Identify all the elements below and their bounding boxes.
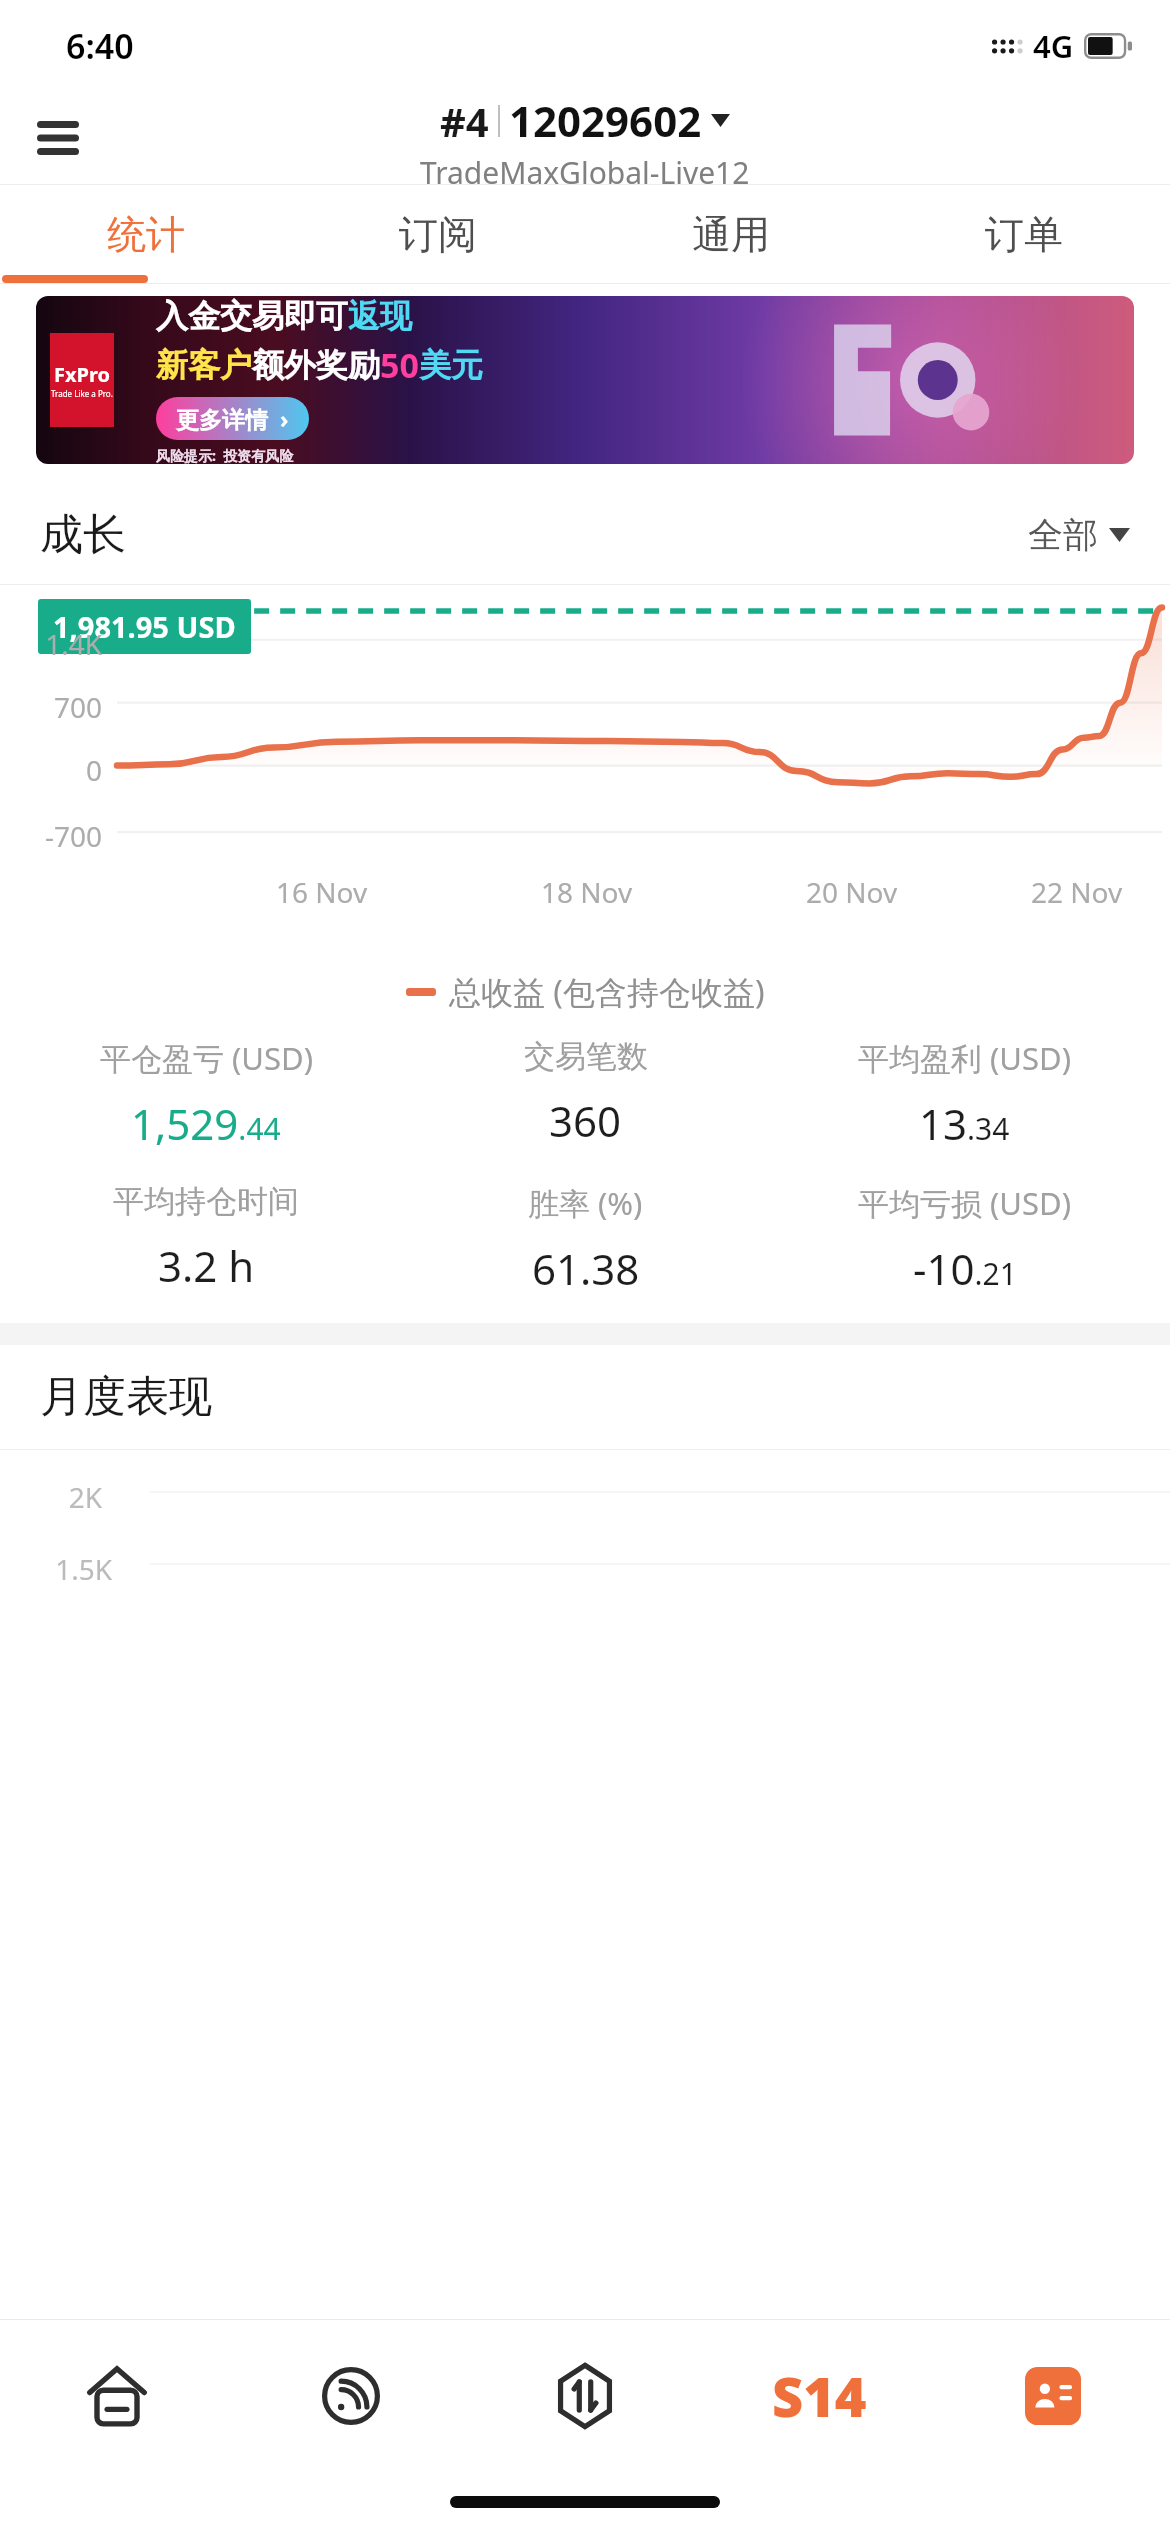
staticText: 16 Nov [276, 873, 368, 911]
button[interactable]: 通用 [584, 185, 877, 283]
staticText: 2K [0, 1478, 102, 1516]
staticText: #4 [440, 94, 489, 148]
staticText: 新客户 [156, 345, 252, 385]
staticText: 胜率 (%) [528, 1182, 643, 1224]
staticText: 统计 [107, 210, 185, 259]
staticText: 平均亏损 (USD) [858, 1182, 1071, 1224]
button[interactable]: 统计 [0, 185, 292, 283]
staticText: -700 [0, 817, 102, 855]
staticText: 700 [0, 688, 102, 726]
staticText: 平均持仓时间 [113, 1182, 299, 1221]
staticText: Trade Like a Pro. [51, 388, 113, 399]
staticText: 18 Nov [541, 873, 633, 911]
staticText: 风险提示: 投资有风险 [156, 446, 294, 464]
staticText: 平均盈利 (USD) [858, 1037, 1071, 1079]
staticText: 月度表现 [40, 1370, 212, 1424]
staticText: 20 Nov [806, 873, 898, 911]
staticText: 4G [1033, 25, 1074, 67]
staticText: 全部 [1028, 513, 1098, 557]
button[interactable]: #4 [440, 92, 730, 149]
button[interactable]: Signals [234, 2320, 468, 2472]
button[interactable]: 订单 [877, 185, 1170, 283]
staticText: 美元 [419, 345, 483, 385]
staticText: 6:40 [66, 23, 134, 69]
staticText: 交易笔数 [524, 1037, 648, 1076]
staticText: 返现 [348, 296, 412, 336]
staticText: 1.5K [0, 1550, 112, 1588]
staticText: 更多详情 › [176, 403, 289, 434]
button[interactable]: S14 [702, 2320, 936, 2472]
staticText: 50 [380, 342, 419, 388]
staticText: 1,529.44 [131, 1095, 281, 1152]
staticText: 额外奖励 [252, 345, 380, 385]
staticText: 成长 [40, 508, 126, 562]
staticText: 订阅 [399, 210, 477, 259]
button[interactable]: 订阅 [292, 185, 584, 283]
staticText: 12029602 [509, 92, 702, 149]
staticText: FxPro [54, 361, 110, 388]
button[interactable]: Profile [936, 2320, 1170, 2472]
staticText: TradeMaxGlobal-Live12 [420, 152, 750, 184]
button[interactable]: Home [0, 2320, 234, 2472]
staticText: 0 [0, 751, 102, 789]
staticText: 61.38 [532, 1240, 640, 1297]
button[interactable]: 更多详情 › [156, 397, 309, 440]
staticText: -10.21 [913, 1240, 1017, 1297]
button[interactable]: Trade [468, 2320, 702, 2472]
button[interactable]: FxPro promotion banner [36, 296, 1134, 464]
staticText: 3.2 h [158, 1237, 255, 1294]
staticText: 1,981.95 USD [53, 607, 236, 646]
staticText: 通用 [692, 210, 770, 259]
staticText: 总收益 (包含持仓收益) [449, 970, 765, 1014]
button[interactable]: Menu [22, 102, 94, 174]
staticText: 13.34 [919, 1095, 1010, 1152]
button[interactable]: 全部 [1028, 513, 1130, 557]
staticText: 22 Nov [1031, 873, 1123, 911]
staticText: 入金交易即可 [156, 296, 348, 336]
staticText: S14 [772, 2359, 867, 2433]
staticText: 1.4K [0, 625, 102, 663]
staticText: 平仓盈亏 (USD) [100, 1037, 313, 1079]
staticText: 360 [549, 1092, 622, 1149]
staticText: 订单 [985, 210, 1063, 259]
